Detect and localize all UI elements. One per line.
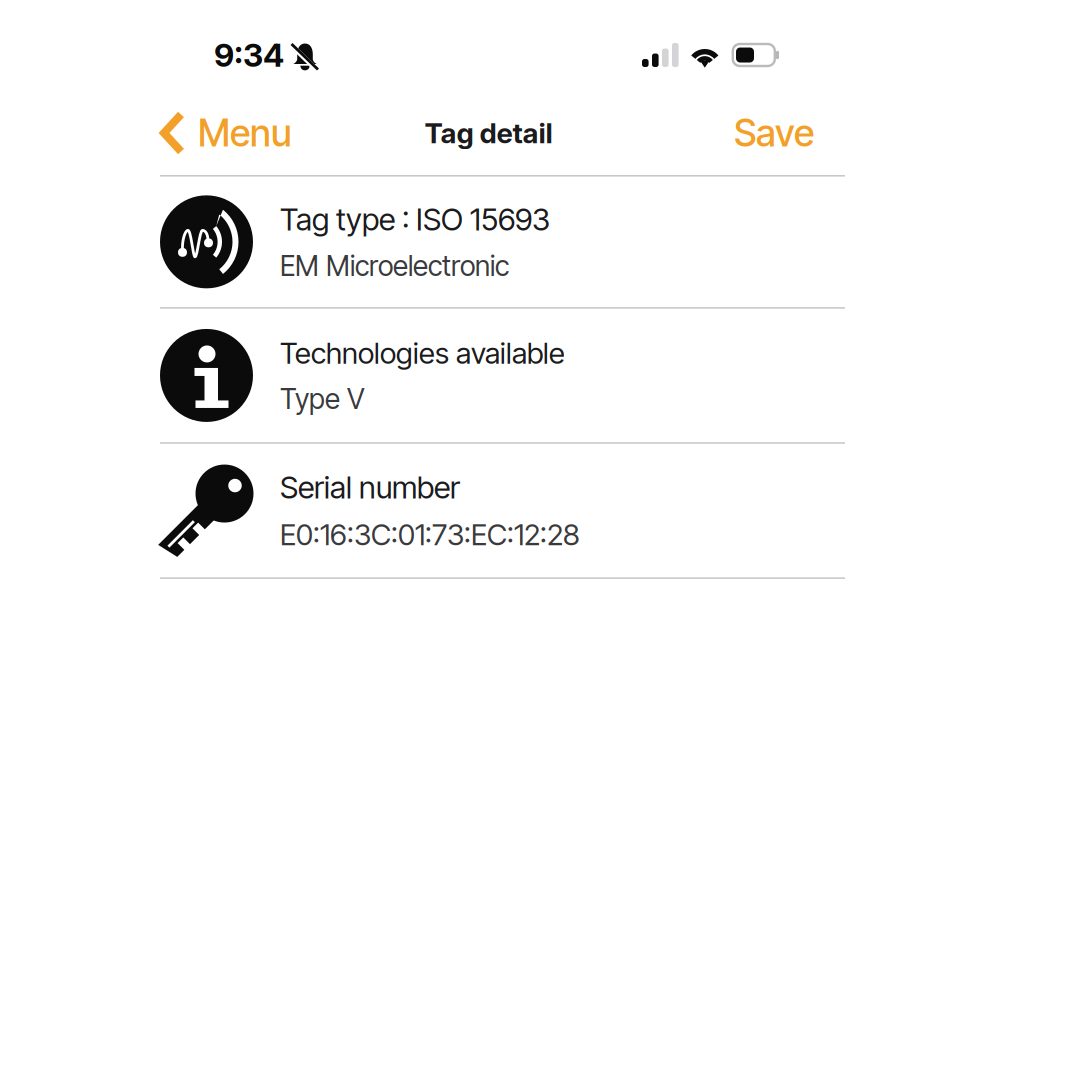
staticText: Type V xyxy=(280,382,365,416)
button[interactable]: Technologies available xyxy=(160,309,845,444)
staticText: Technologies available xyxy=(280,335,565,371)
button[interactable]: Menu xyxy=(160,104,292,162)
staticText: EM Microelectronic xyxy=(280,249,509,283)
button[interactable]: Serial number xyxy=(160,444,845,579)
staticText: E0:16:3C:01:73:EC:12:28 xyxy=(280,517,580,552)
staticText: 9:34 xyxy=(214,36,284,74)
staticText: Save xyxy=(734,110,814,156)
staticText: Serial number xyxy=(280,469,460,506)
button[interactable]: Save xyxy=(734,104,814,162)
staticText: Tag type : ISO 15693 xyxy=(280,201,550,238)
button[interactable]: Tag type : ISO 15693 xyxy=(160,177,845,309)
staticText: Tag detail xyxy=(424,116,552,150)
staticText: Menu xyxy=(198,110,292,156)
